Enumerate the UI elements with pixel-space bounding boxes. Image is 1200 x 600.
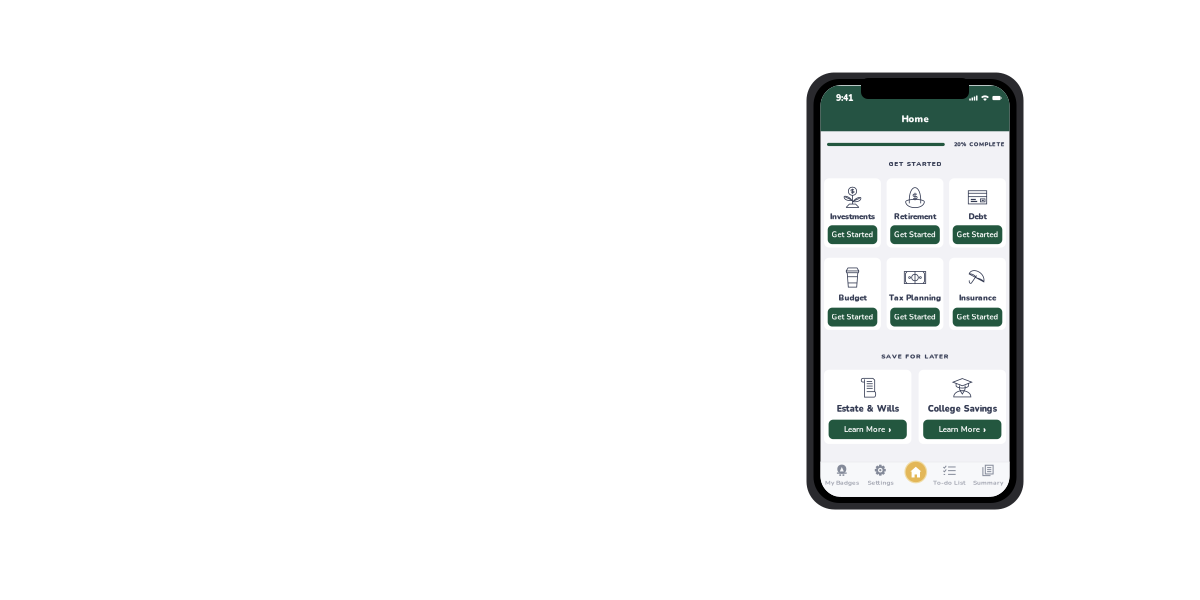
staticText: Insurance [959, 292, 996, 303]
button[interactable]: Get Started [890, 225, 940, 244]
staticText: Budget [838, 292, 866, 303]
staticText: To-do List [933, 478, 966, 487]
staticText: Settings [867, 478, 893, 487]
staticText: Retirement [894, 211, 936, 222]
staticText: My Badges [825, 478, 859, 487]
staticText: Get Started [894, 229, 936, 240]
staticText: GET STARTED [888, 159, 941, 168]
staticText: Get Started [956, 229, 998, 240]
button[interactable]: Learn More [923, 420, 1001, 439]
button[interactable]: Learn More [829, 420, 907, 439]
staticText: SAVE FOR LATER [881, 352, 949, 361]
staticText: Get Started [831, 229, 873, 240]
button[interactable]: Summary [971, 464, 1005, 494]
staticText: Investments [830, 211, 875, 222]
staticText: 9:41 [836, 92, 853, 104]
button[interactable]: My Badges [825, 464, 859, 494]
staticText: Summary [973, 478, 1003, 487]
staticText: Learn More [844, 424, 885, 435]
button[interactable]: Get Started [953, 308, 1002, 326]
staticText: Debt [968, 211, 986, 222]
button[interactable]: Get Started [828, 308, 877, 326]
button[interactable]: To-do List [932, 464, 966, 494]
button[interactable]: Settings [863, 464, 897, 494]
staticText: Estate & Wills [837, 403, 899, 415]
button[interactable]: Home [903, 459, 929, 485]
staticText: Get Started [894, 312, 936, 322]
button[interactable]: Get Started [890, 308, 940, 326]
staticText: Home [901, 113, 928, 126]
staticText: Learn More [939, 424, 980, 435]
staticText: › [888, 423, 891, 436]
staticText: Tax Planning [889, 292, 941, 303]
staticText: 20% COMPLETE [954, 140, 1005, 148]
staticText: › [983, 423, 986, 436]
button[interactable]: Get Started [828, 225, 877, 244]
staticText: Get Started [831, 312, 873, 322]
staticText: Get Started [956, 312, 998, 322]
button[interactable]: Get Started [953, 225, 1002, 244]
staticText: College Savings [928, 403, 997, 415]
